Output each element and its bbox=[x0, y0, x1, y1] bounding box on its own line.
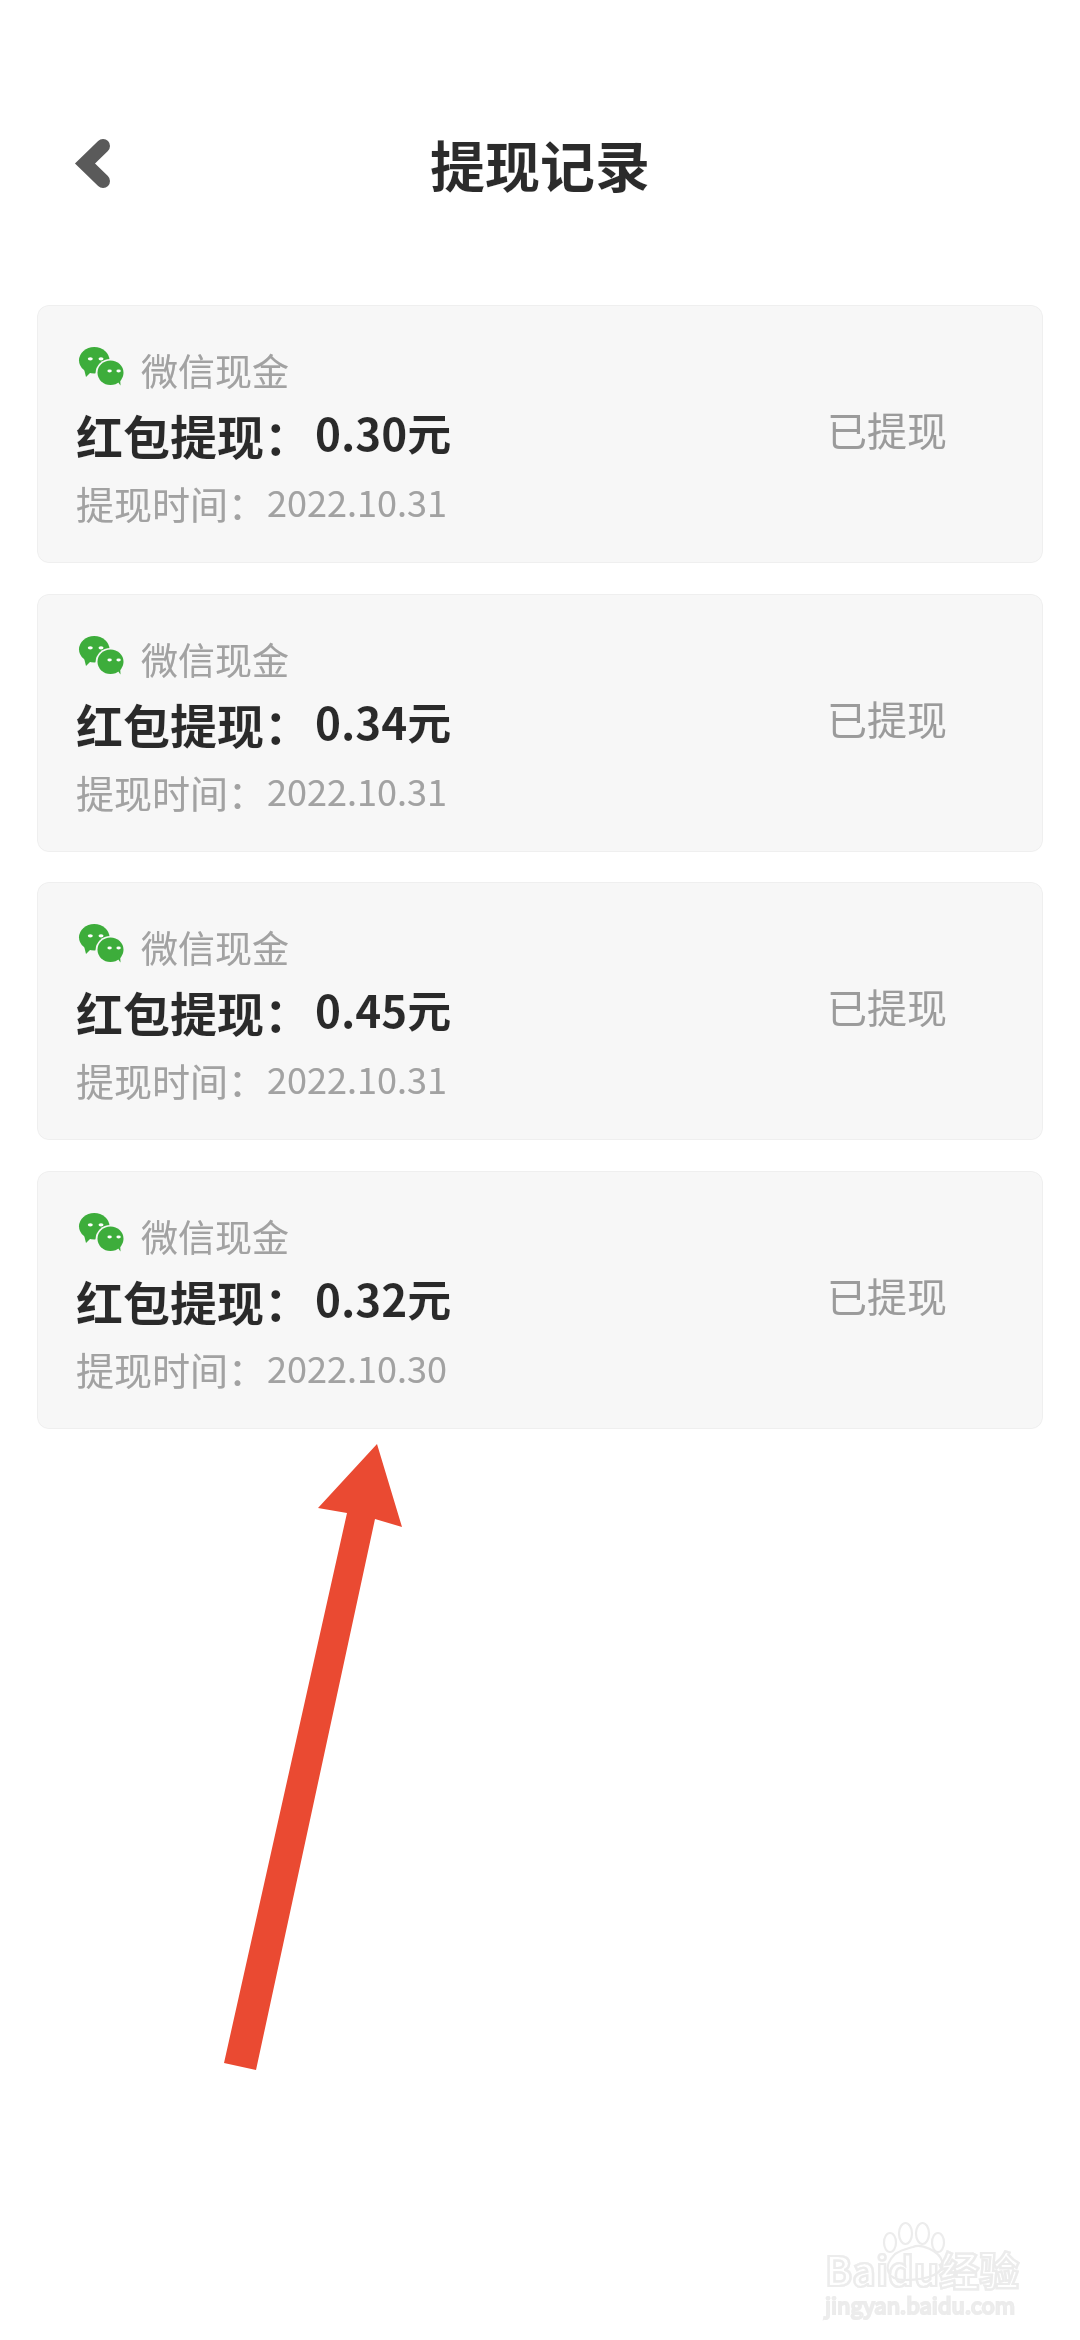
staticText: 微信现金 bbox=[141, 632, 289, 686]
staticText: 微信现金 bbox=[141, 1209, 289, 1263]
staticText: 2022.10.31 bbox=[267, 1052, 447, 1104]
button[interactable]: 微信现金 bbox=[37, 594, 1043, 852]
staticText: 微信现金 bbox=[141, 343, 289, 397]
staticText: 已提现 bbox=[827, 1266, 947, 1324]
staticText: 已提现 bbox=[827, 400, 947, 458]
button[interactable]: 微信现金 bbox=[37, 882, 1043, 1140]
staticText: 红包提现： bbox=[76, 400, 311, 468]
staticText: 提现时间： bbox=[76, 475, 267, 530]
staticText: 2022.10.31 bbox=[267, 475, 447, 527]
staticText: 0.30元 bbox=[315, 400, 452, 464]
staticText: 红包提现： bbox=[76, 689, 311, 757]
staticText: 2022.10.31 bbox=[267, 764, 447, 816]
staticText: 已提现 bbox=[827, 977, 947, 1035]
button[interactable]: 微信现金 bbox=[37, 305, 1043, 563]
button[interactable]: Back bbox=[38, 119, 118, 199]
button[interactable]: 微信现金 bbox=[37, 1171, 1043, 1429]
staticText: 微信现金 bbox=[141, 920, 289, 974]
staticText: 已提现 bbox=[827, 689, 947, 747]
staticText: 提现时间： bbox=[76, 764, 267, 819]
staticText: 红包提现： bbox=[76, 977, 311, 1045]
staticText: 0.45元 bbox=[315, 977, 452, 1041]
staticText: 提现时间： bbox=[76, 1341, 267, 1396]
staticText: 红包提现： bbox=[76, 1266, 311, 1334]
staticText: jingyan.baidu.com bbox=[825, 2288, 1016, 2320]
staticText: Baidu经验 bbox=[825, 2240, 1020, 2298]
staticText: 0.32元 bbox=[315, 1266, 452, 1330]
staticText: 提现记录 bbox=[0, 123, 1080, 203]
staticText: 提现时间： bbox=[76, 1052, 267, 1107]
staticText: 2022.10.30 bbox=[267, 1341, 447, 1393]
staticText: 0.34元 bbox=[315, 689, 452, 753]
